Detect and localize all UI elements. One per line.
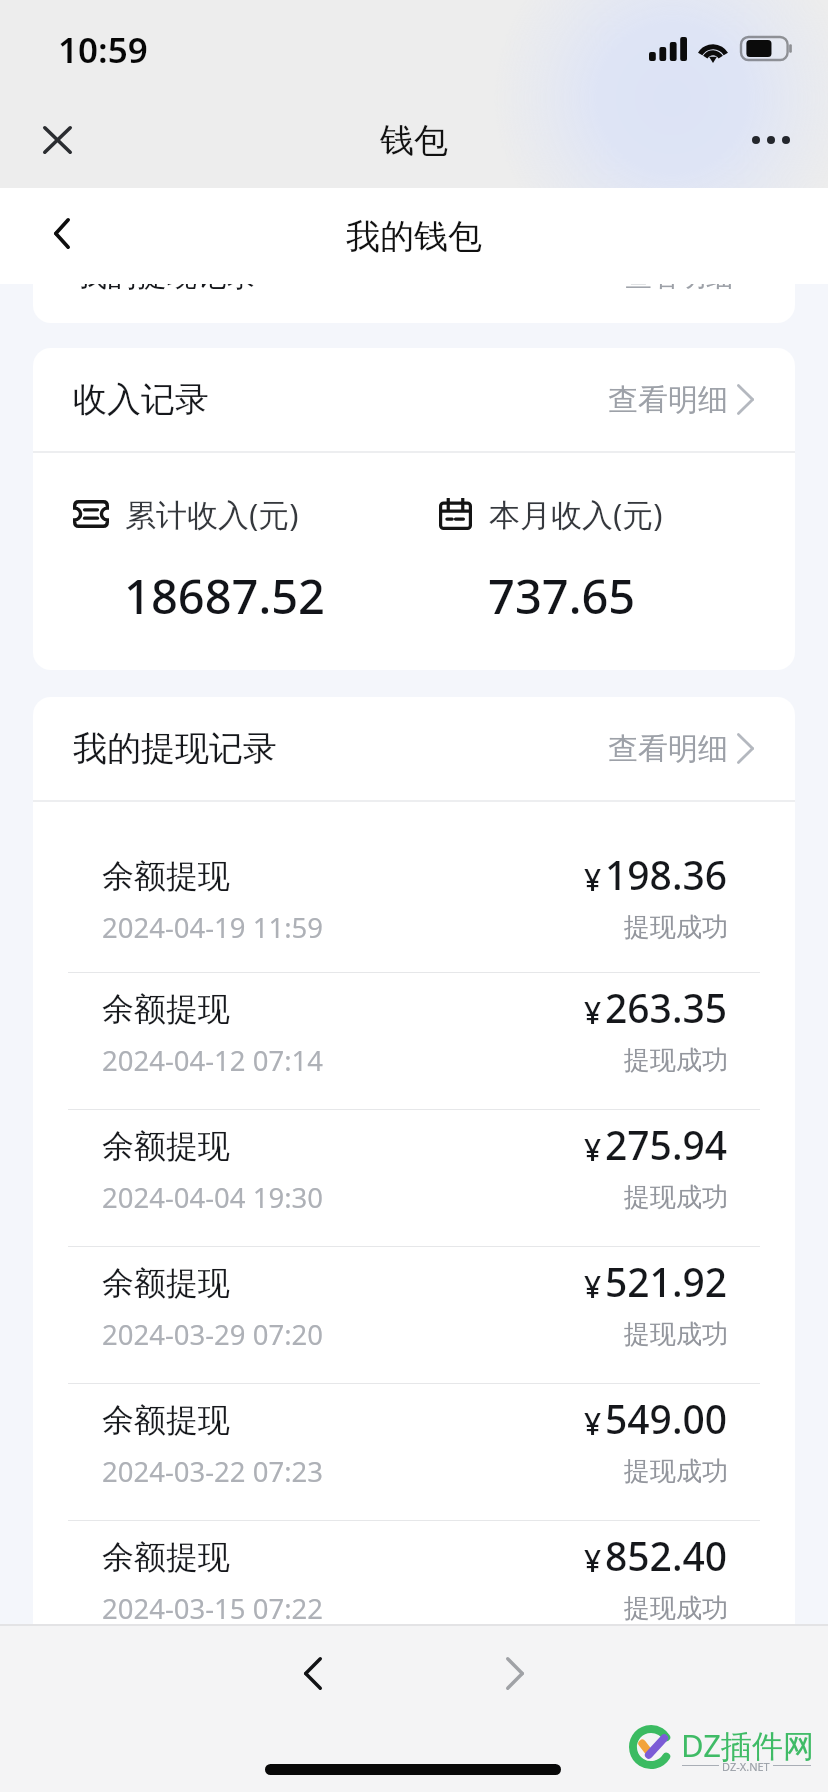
button[interactable]: 收入记录 <box>33 348 795 451</box>
staticText: 余额提现 <box>102 1126 230 1166</box>
staticText: 521.92 <box>605 1255 728 1308</box>
button[interactable]: 余额提现 <box>33 802 795 972</box>
staticText: 2024-03-22 07:23 <box>102 1453 323 1490</box>
staticText: ¥ <box>584 1540 602 1581</box>
staticText: 余额提现 <box>102 1263 230 1303</box>
button[interactable]: 余额提现 <box>33 1658 795 1792</box>
staticText: DZ-X.NET <box>722 1759 770 1772</box>
button[interactable]: 余额提现 <box>33 1521 795 1657</box>
staticText: 18687.52 <box>124 564 325 628</box>
staticText: 提现成功 <box>624 911 728 944</box>
staticText: 198.36 <box>605 848 728 901</box>
staticText: ¥ <box>584 859 602 900</box>
button[interactable]: Back <box>275 1635 351 1711</box>
staticText: 737.65 <box>488 564 636 628</box>
staticText: 2024-03-15 07:22 <box>102 1590 323 1627</box>
button[interactable]: More options <box>733 102 809 178</box>
staticText: 549.00 <box>605 1392 728 1445</box>
staticText: 余额提现 <box>102 1537 230 1577</box>
staticText: 累计收入(元) <box>125 493 299 535</box>
staticText: 余额提现 <box>102 1400 230 1440</box>
staticText: 提现成功 <box>624 1318 728 1351</box>
staticText: 余额提现 <box>102 989 230 1029</box>
button[interactable]: 我的提现记录 <box>33 697 795 800</box>
staticText: 我的钱包 <box>346 215 482 258</box>
staticText: 查看明细 <box>608 730 728 768</box>
button[interactable]: 余额提现 <box>33 1384 795 1520</box>
staticText: 本月收入(元) <box>489 493 663 535</box>
staticText: 263.35 <box>605 981 728 1034</box>
button[interactable]: 余额提现 <box>33 1110 795 1246</box>
staticText: 提现成功 <box>624 1592 728 1625</box>
staticText: ¥ <box>584 1129 602 1170</box>
staticText: 852.40 <box>605 1529 728 1582</box>
staticText: ¥ <box>584 1403 602 1444</box>
staticText: 查看明细 <box>608 381 728 419</box>
button[interactable]: 余额提现 <box>33 973 795 1109</box>
button[interactable]: Close <box>19 102 95 178</box>
staticText: 10:59 <box>58 26 148 74</box>
staticText: 2024-04-19 11:59 <box>102 909 323 946</box>
staticText: 收入记录 <box>73 378 209 421</box>
staticText: 余额提现 <box>102 856 230 896</box>
staticText: 2024-04-12 07:14 <box>102 1042 323 1079</box>
button[interactable]: Back <box>27 198 97 268</box>
button[interactable]: Forward <box>477 1635 553 1711</box>
staticText: 提现成功 <box>624 1455 728 1488</box>
staticText: 我的提现记录 <box>73 727 277 770</box>
staticText: DZ插件网 <box>681 1724 815 1766</box>
staticText: 我的提现记录 <box>77 284 257 295</box>
staticText: ¥ <box>584 1266 602 1307</box>
button[interactable]: 余额提现 <box>33 1247 795 1383</box>
staticText: 查看明细 <box>625 284 733 294</box>
staticText: 提现成功 <box>624 1044 728 1077</box>
staticText: 2024-03-29 07:20 <box>102 1316 323 1353</box>
staticText: ¥ <box>584 992 602 1033</box>
staticText: 275.94 <box>605 1118 728 1171</box>
staticText: 钱包 <box>380 119 448 162</box>
staticText: 提现成功 <box>624 1181 728 1214</box>
staticText: 提现成功 <box>624 1729 728 1762</box>
staticText: 2024-04-04 19:30 <box>102 1179 323 1216</box>
